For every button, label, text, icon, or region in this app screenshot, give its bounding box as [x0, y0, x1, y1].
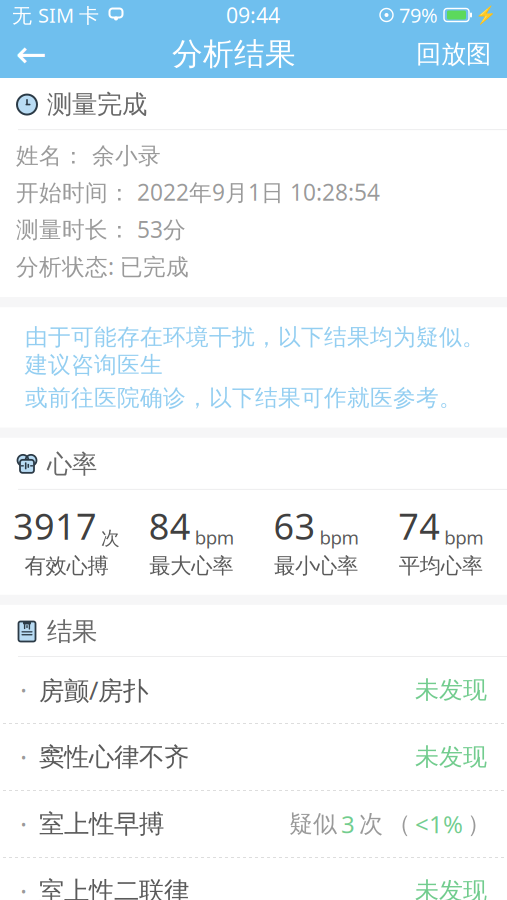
button[interactable]: ·	[0, 724, 507, 790]
staticText: 室上性二联律	[39, 875, 189, 900]
staticText: ·	[20, 873, 27, 900]
staticText: 分析状态: 已完成	[16, 251, 189, 281]
staticText: 疑似	[289, 809, 337, 839]
staticText: 分析结果	[172, 35, 296, 73]
staticText: 回放图	[416, 38, 491, 69]
button[interactable]: 返回	[0, 30, 62, 78]
staticText: 次	[101, 527, 120, 550]
staticText: 平均心率	[399, 553, 483, 579]
staticText: 09:44	[226, 1, 280, 29]
staticText: 74	[398, 502, 440, 550]
staticText: 房颤/房扑	[39, 673, 148, 707]
staticText: 由于可能存在环境干扰，以下结果均为疑似。建议咨询医生	[25, 323, 485, 379]
staticText: 室上性早搏	[39, 808, 164, 840]
staticText: 或前往医院确诊，以下结果可作就医参考。	[25, 384, 462, 412]
staticText: 未发现	[415, 742, 487, 772]
staticText: 未发现	[415, 675, 487, 705]
staticText: <1%	[415, 808, 463, 840]
staticText: 79%	[399, 2, 438, 28]
staticText: ←	[15, 33, 46, 75]
staticText: 未发现	[415, 876, 487, 900]
staticText: 结果	[47, 616, 97, 647]
staticText: 次	[359, 809, 383, 839]
staticText: ⚡	[475, 5, 497, 25]
staticText: bpm	[319, 525, 358, 550]
button[interactable]: ·	[0, 657, 507, 723]
staticText: 3917	[13, 502, 97, 550]
staticText: 测量时长： 53分	[16, 214, 186, 244]
staticText: ）	[467, 809, 491, 839]
staticText: 3	[341, 808, 355, 840]
button[interactable]: 回放图	[406, 30, 507, 78]
button[interactable]: ·	[0, 858, 507, 900]
staticText: 最小心率	[274, 553, 358, 579]
staticText: 63	[273, 502, 315, 550]
staticText: （	[387, 809, 411, 839]
staticText: 窦性心律不齐	[39, 741, 189, 773]
staticText: 最大心率	[149, 553, 233, 579]
staticText: ·	[20, 672, 27, 708]
staticText: 测量完成	[47, 89, 147, 120]
staticText: bpm	[444, 525, 483, 550]
staticText: 有效心搏	[24, 553, 108, 579]
staticText: ·	[20, 739, 27, 775]
staticText: 84	[149, 502, 191, 550]
staticText: 开始时间： 2022年9月1日 10:28:54	[16, 177, 380, 207]
staticText: 心率	[47, 449, 97, 480]
staticText: bpm	[195, 525, 234, 550]
staticText: ·	[20, 806, 27, 842]
staticText: 无 SIM 卡	[12, 2, 99, 28]
staticText: 姓名： 余小录	[16, 142, 161, 170]
button[interactable]: ·	[0, 791, 507, 857]
